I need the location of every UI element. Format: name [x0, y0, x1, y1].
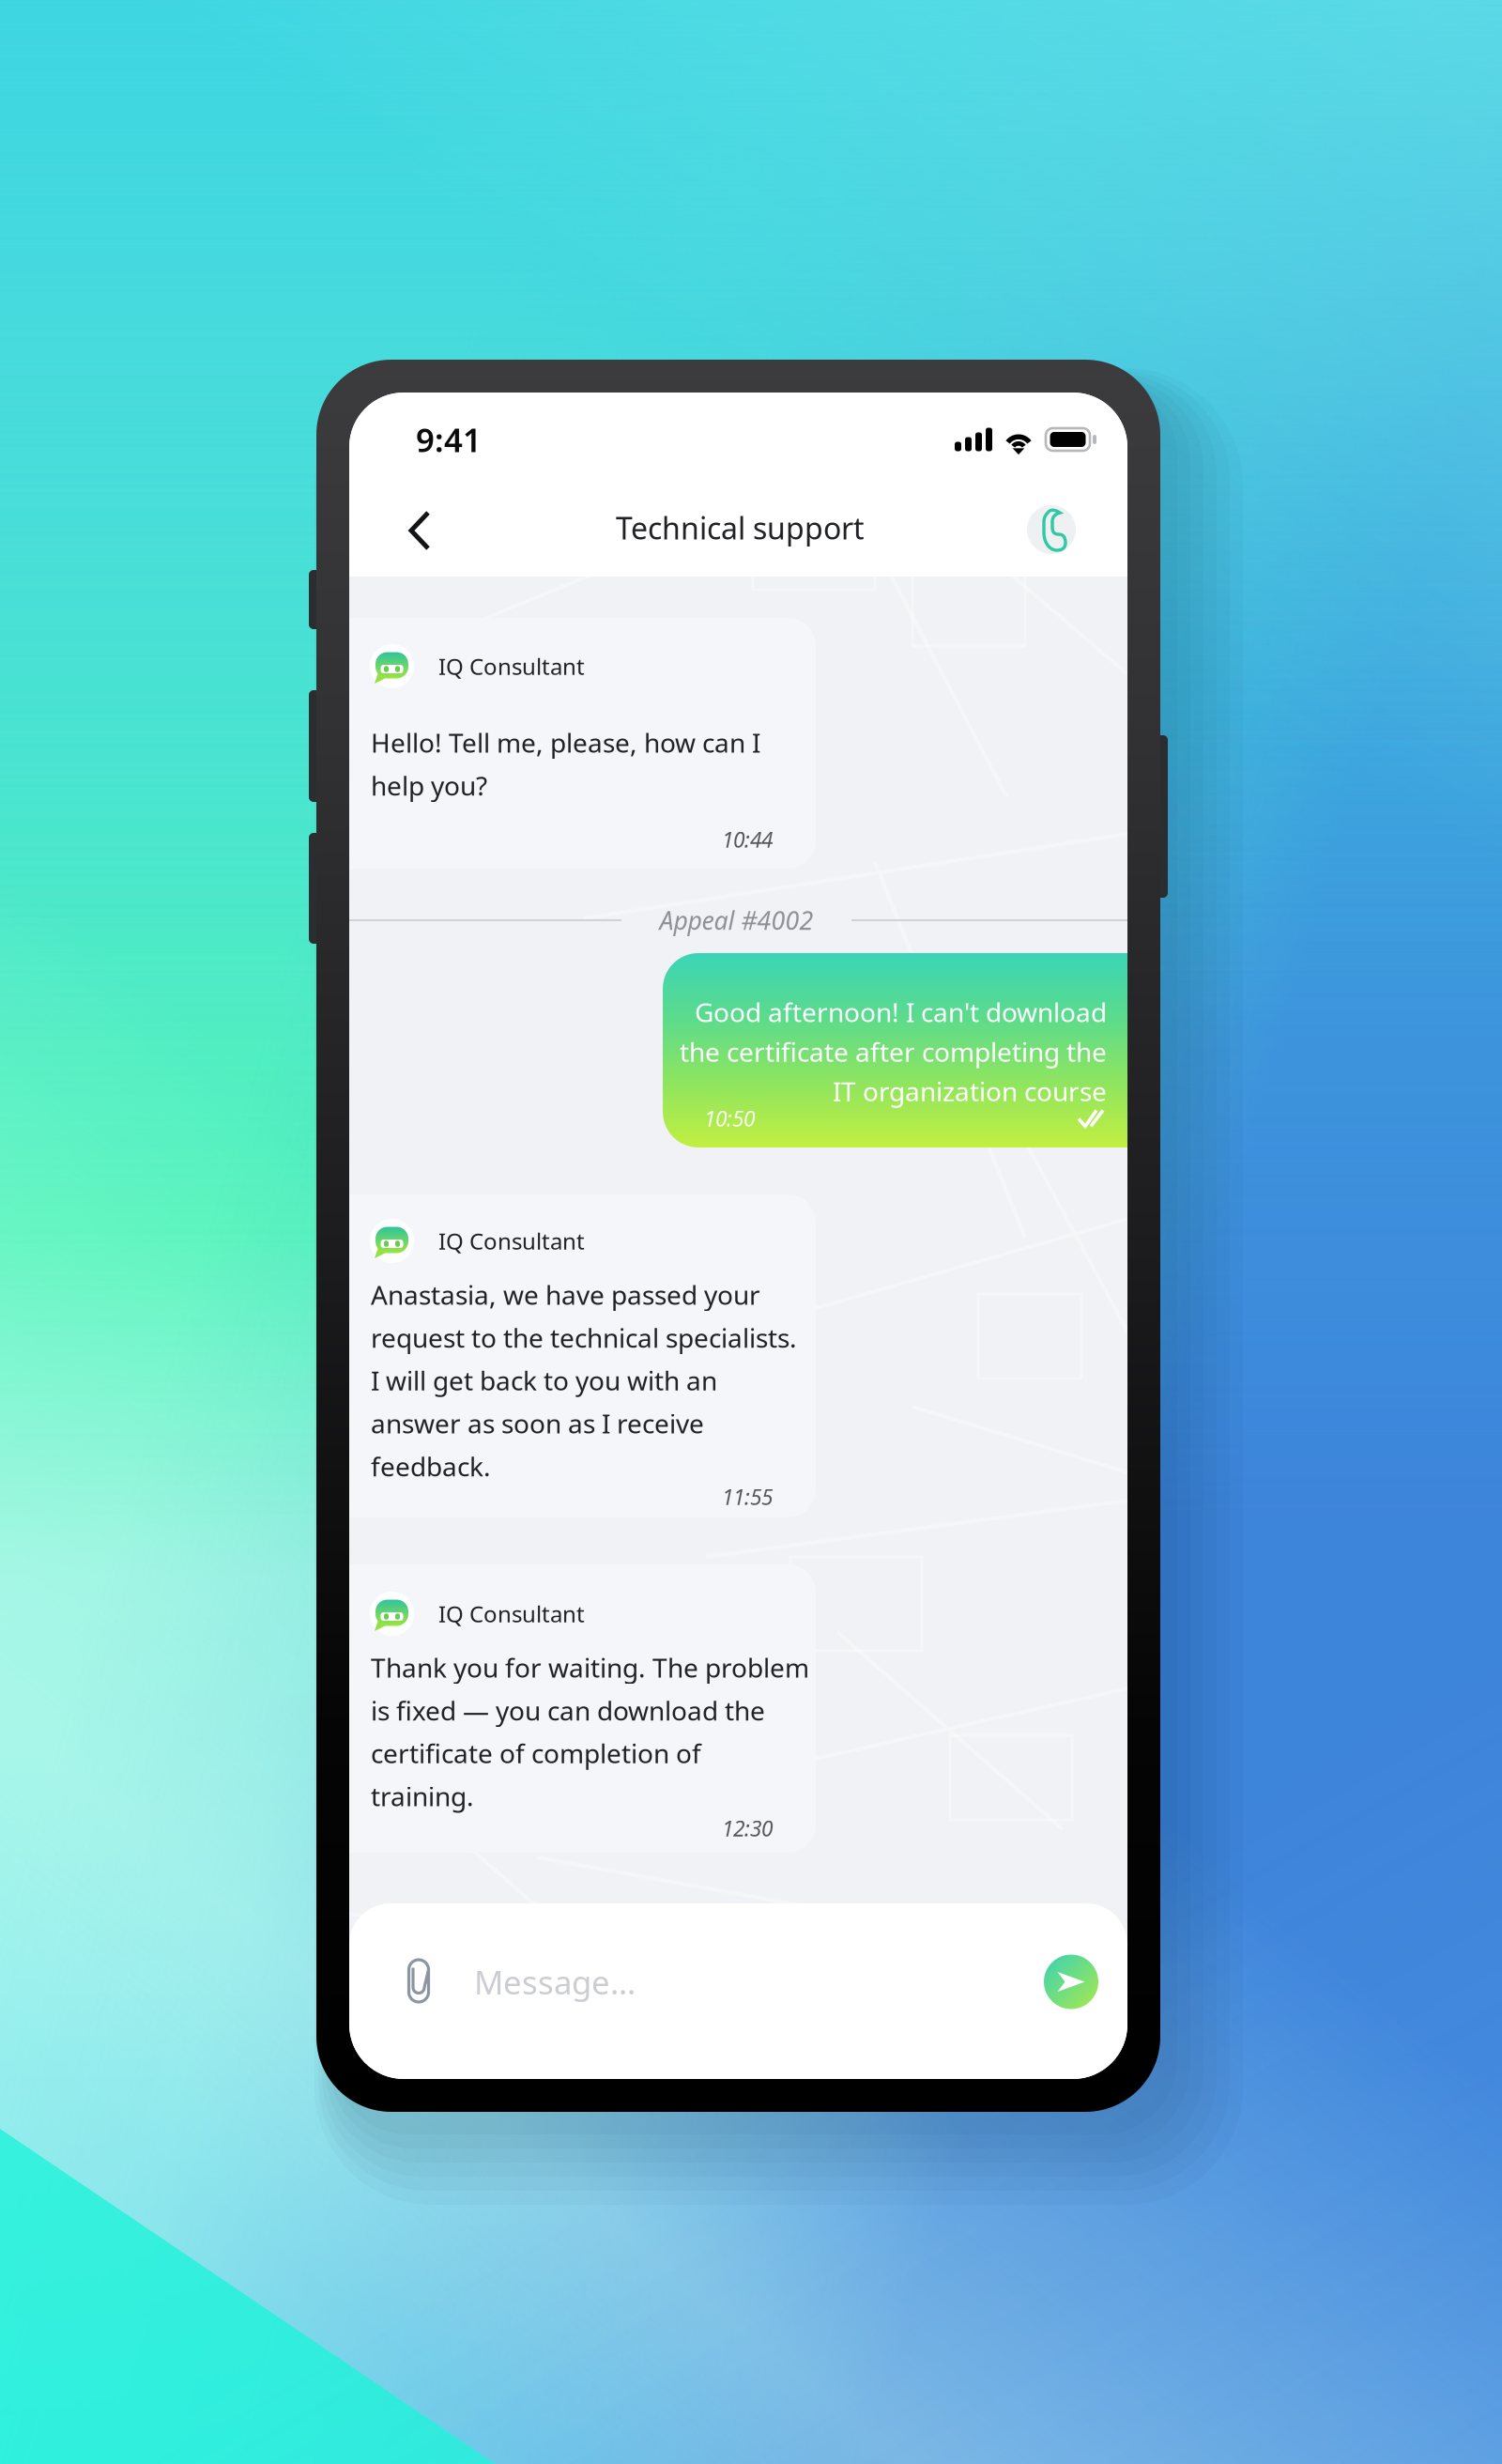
- staticText: Appeal #4002: [659, 904, 813, 937]
- button[interactable]: Send: [1038, 1949, 1104, 2015]
- staticText: certificate of completion of: [371, 1736, 701, 1771]
- staticText: Hello! Tell me, please, how can I: [371, 725, 760, 760]
- staticText: is fixed — you can download the: [371, 1693, 765, 1728]
- staticText: feedback.: [371, 1449, 491, 1484]
- staticText: Thank you for waiting. The problem: [371, 1650, 809, 1685]
- staticText: Message...: [474, 1960, 636, 2003]
- button[interactable]: Attach: [391, 1949, 448, 2015]
- staticText: 11:55: [722, 1483, 773, 1511]
- staticText: the certificate after completing the: [680, 1034, 1107, 1069]
- staticText: Technical support: [616, 508, 865, 548]
- staticText: answer as soon as I receive: [371, 1406, 704, 1441]
- staticText: IQ Consultant: [438, 651, 585, 681]
- staticText: 10:50: [704, 1104, 755, 1132]
- staticText: IQ Consultant: [438, 1226, 585, 1256]
- staticText: IQ Consultant: [438, 1599, 585, 1629]
- button[interactable]: Back: [384, 488, 455, 567]
- staticText: Anastasia, we have passed your: [371, 1277, 760, 1312]
- staticText: I will get back to you with an: [371, 1363, 717, 1398]
- staticText: IT organization course: [833, 1074, 1107, 1109]
- staticText: training.: [371, 1779, 474, 1813]
- staticText: 9:41: [416, 418, 482, 461]
- staticText: request to the technical specialists.: [371, 1320, 797, 1355]
- staticText: Good afternoon! I can't download: [695, 994, 1107, 1029]
- staticText: 10:44: [722, 825, 773, 854]
- staticText: help you?: [371, 768, 487, 803]
- button[interactable]: Call: [1019, 488, 1091, 567]
- staticText: 12:30: [722, 1814, 773, 1842]
